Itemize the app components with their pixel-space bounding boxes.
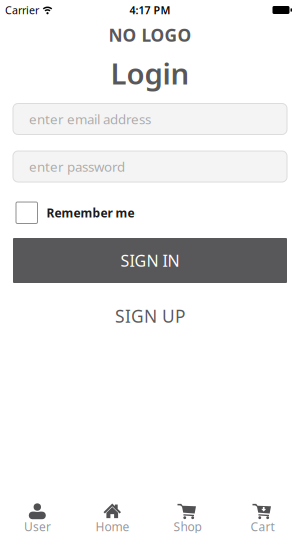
- button[interactable]: enter email address: [0, 103, 300, 134]
- staticText: SIGN IN: [120, 250, 179, 271]
- staticText: enter email address: [29, 110, 151, 128]
- staticText: Cart: [250, 518, 274, 533]
- button[interactable]: Shop: [150, 500, 225, 533]
- button[interactable]: SIGN UP: [115, 304, 185, 327]
- staticText: Login: [110, 53, 189, 92]
- staticText: Remember me: [46, 205, 134, 221]
- button[interactable]: User: [0, 500, 75, 533]
- staticText: NO LOGO: [108, 23, 191, 46]
- button[interactable]: SIGN IN: [0, 238, 300, 283]
- staticText: SIGN UP: [115, 304, 185, 327]
- button[interactable]: enter password: [0, 151, 300, 182]
- staticText: 4:17 PM: [129, 3, 170, 17]
- staticText: enter password: [29, 158, 125, 175]
- staticText: Home: [95, 518, 129, 533]
- staticText: Carrier: [5, 3, 39, 17]
- staticText: Shop: [173, 518, 201, 533]
- button[interactable]: Home: [75, 500, 150, 533]
- staticText: User: [24, 518, 51, 533]
- button[interactable]: [16, 202, 37, 223]
- button[interactable]: Cart: [225, 500, 300, 533]
